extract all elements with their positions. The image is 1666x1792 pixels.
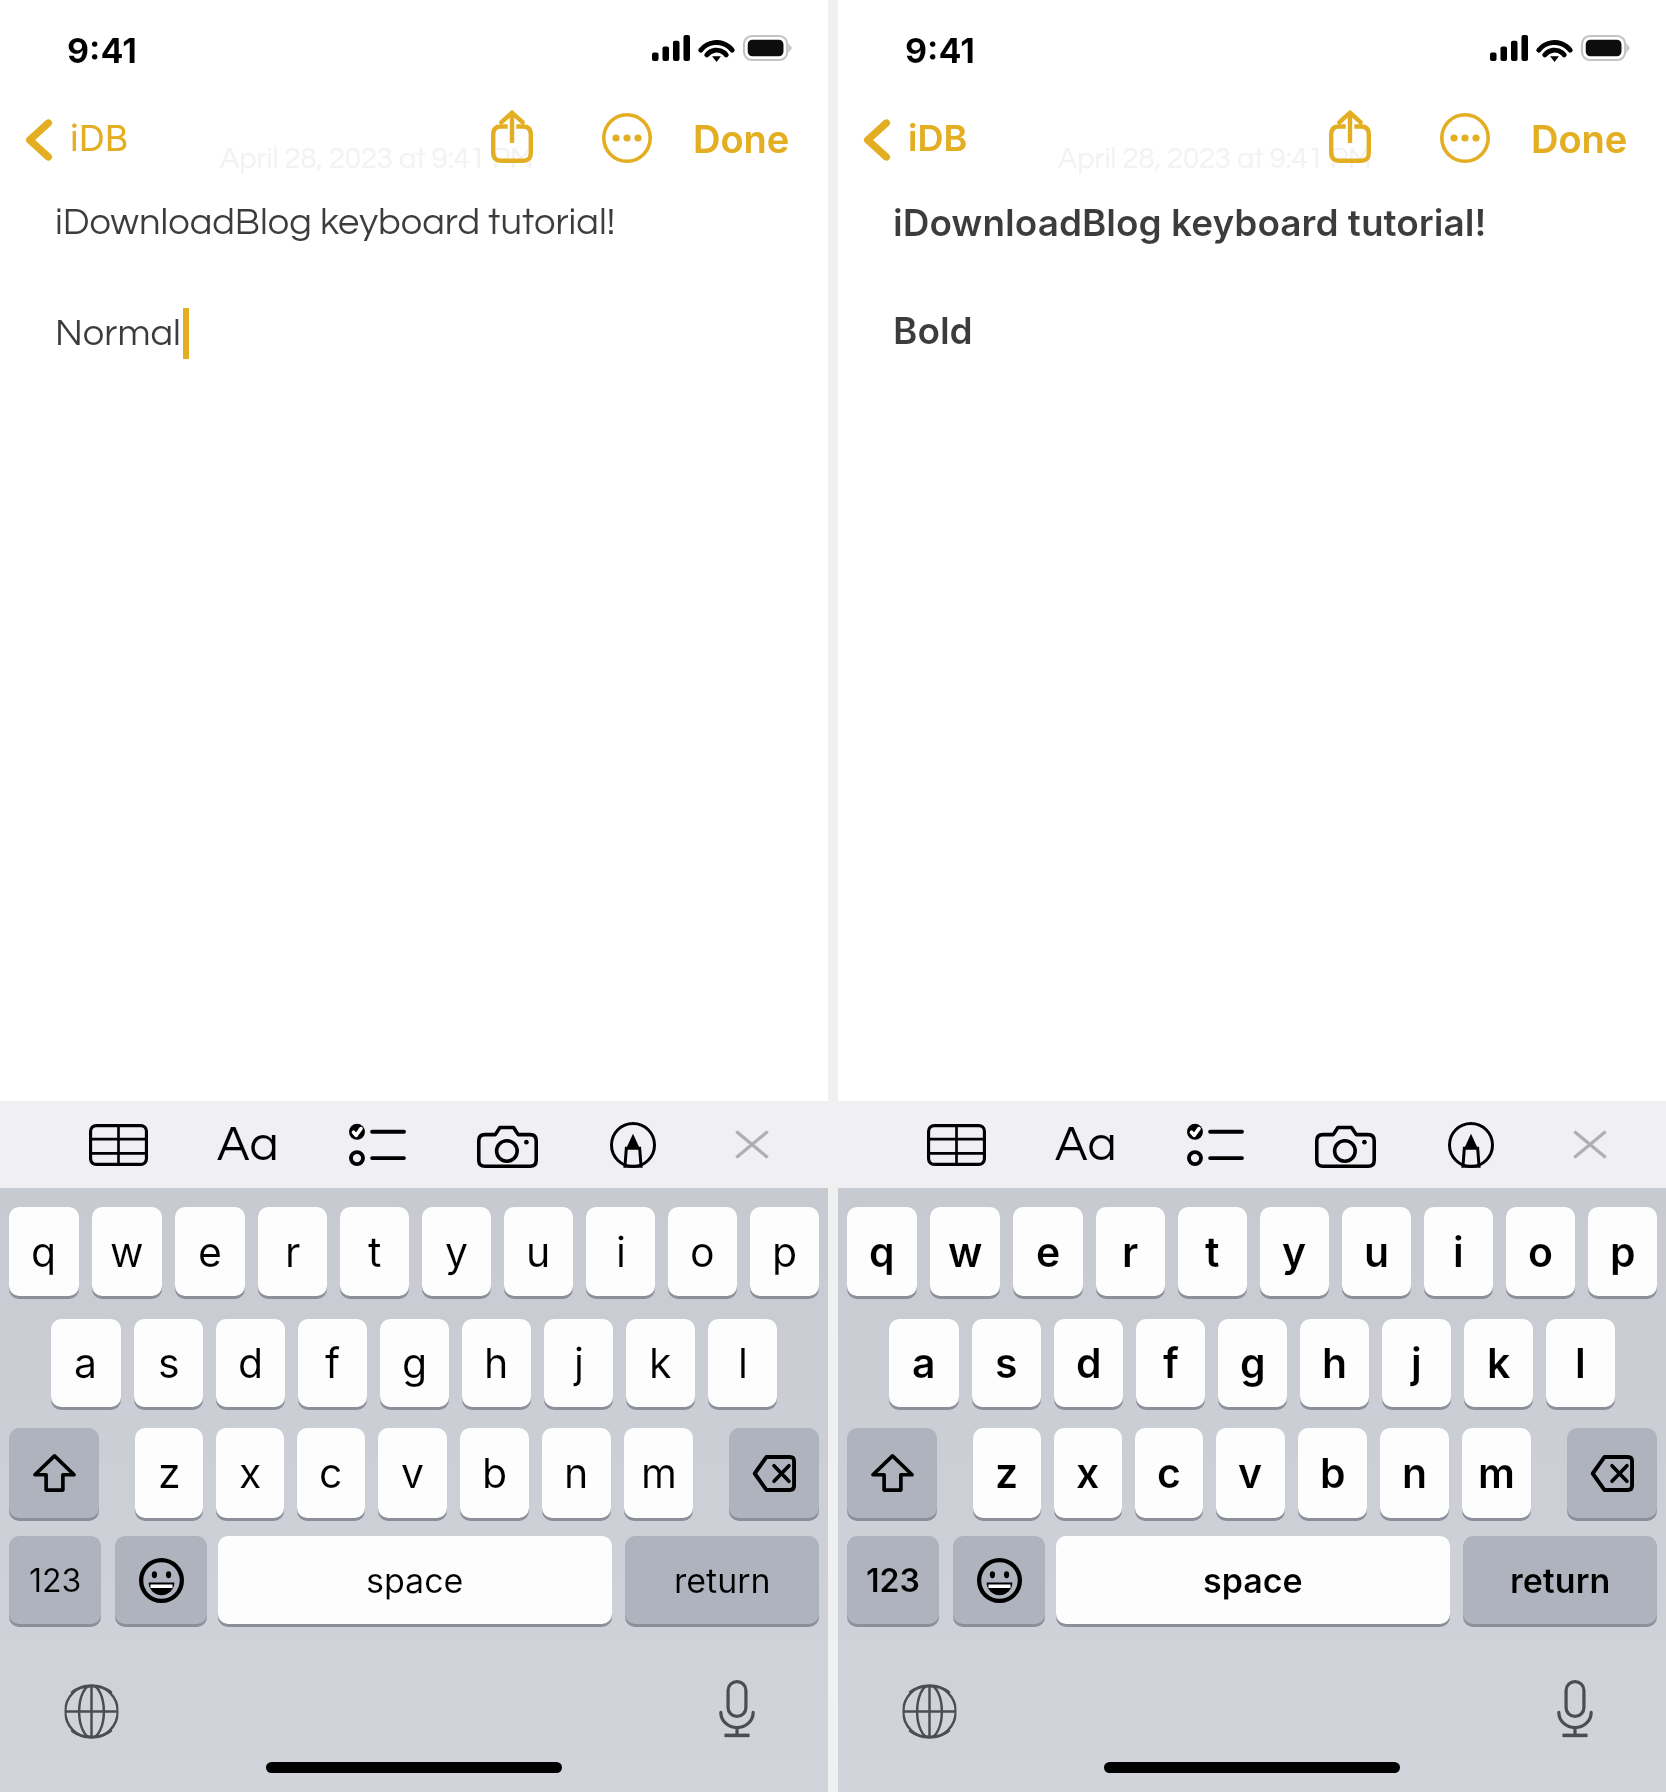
button[interactable]: Markup <box>1431 1109 1511 1181</box>
button[interactable]: m <box>1462 1428 1531 1518</box>
button[interactable]: Markup <box>593 1109 673 1181</box>
staticText: p <box>1610 1227 1636 1277</box>
button[interactable]: b <box>1298 1428 1367 1518</box>
button[interactable]: Close keyboard <box>712 1108 792 1180</box>
button[interactable]: d <box>216 1319 285 1407</box>
button[interactable]: v <box>378 1428 447 1518</box>
staticText: n <box>1402 1448 1428 1498</box>
button[interactable]: c <box>297 1428 365 1518</box>
button[interactable]: o <box>668 1207 737 1296</box>
button[interactable]: p <box>1588 1207 1657 1296</box>
button[interactable]: u <box>504 1207 573 1296</box>
button[interactable]: Done <box>688 105 794 173</box>
button[interactable]: Insert table <box>916 1109 996 1181</box>
button[interactable]: e <box>175 1207 245 1296</box>
button[interactable]: Change keyboard <box>50 1670 132 1752</box>
staticText: i <box>1453 1227 1464 1277</box>
button[interactable]: Emoji <box>115 1536 207 1624</box>
button[interactable]: Change keyboard <box>888 1670 970 1752</box>
button[interactable]: i <box>586 1207 655 1296</box>
button[interactable]: f <box>1136 1319 1205 1407</box>
button[interactable]: Close keyboard <box>1550 1108 1630 1180</box>
button[interactable]: Dictate <box>698 1668 776 1750</box>
button[interactable]: iDB <box>26 116 129 160</box>
button[interactable]: z <box>973 1428 1041 1518</box>
button[interactable]: h <box>462 1319 531 1407</box>
staticText: f <box>1163 1338 1179 1388</box>
button[interactable]: l <box>1546 1319 1615 1407</box>
button[interactable]: Aa <box>208 1109 288 1181</box>
button[interactable]: More options <box>589 100 665 176</box>
button[interactable]: d <box>1054 1319 1123 1407</box>
button[interactable]: z <box>135 1428 203 1518</box>
button[interactable]: space <box>218 1536 612 1624</box>
button[interactable]: s <box>972 1319 1041 1407</box>
button[interactable]: return <box>625 1536 819 1624</box>
button[interactable]: a <box>889 1319 959 1407</box>
button[interactable]: iDB <box>864 116 968 160</box>
button[interactable]: x <box>1054 1428 1122 1518</box>
staticText: c <box>319 1448 343 1498</box>
button[interactable]: n <box>1380 1428 1449 1518</box>
button[interactable]: Shift <box>9 1428 99 1518</box>
button[interactable]: m <box>624 1428 693 1518</box>
staticText: x <box>239 1448 262 1498</box>
button[interactable]: x <box>216 1428 284 1518</box>
button[interactable]: w <box>92 1207 162 1296</box>
button[interactable]: Camera <box>1305 1111 1385 1183</box>
button[interactable]: Share <box>1312 97 1388 173</box>
button[interactable]: 123 <box>847 1536 939 1624</box>
button[interactable]: j <box>544 1319 613 1407</box>
button[interactable]: f <box>298 1319 367 1407</box>
button[interactable]: r <box>1096 1207 1165 1296</box>
button[interactable]: o <box>1506 1207 1575 1296</box>
button[interactable]: Emoji <box>953 1536 1045 1624</box>
button[interactable]: a <box>51 1319 121 1407</box>
staticText: z <box>995 1448 1019 1498</box>
button[interactable]: y <box>1260 1207 1329 1296</box>
button[interactable]: More options <box>1427 100 1503 176</box>
button[interactable]: return <box>1463 1536 1657 1624</box>
button[interactable]: s <box>134 1319 203 1407</box>
button[interactable]: Checklist <box>336 1109 416 1181</box>
button[interactable]: e <box>1013 1207 1083 1296</box>
button[interactable]: j <box>1382 1319 1451 1407</box>
button[interactable]: Camera <box>467 1111 547 1183</box>
button[interactable]: Aa <box>1046 1109 1126 1181</box>
button[interactable]: t <box>340 1207 409 1296</box>
button[interactable]: Shift <box>847 1428 937 1518</box>
button[interactable]: k <box>1464 1319 1533 1407</box>
button[interactable]: r <box>258 1207 327 1296</box>
staticText: b <box>1320 1448 1346 1498</box>
button[interactable]: Backspace <box>729 1428 819 1518</box>
button[interactable]: v <box>1216 1428 1285 1518</box>
button[interactable]: Dictate <box>1536 1668 1614 1750</box>
button[interactable]: l <box>708 1319 777 1407</box>
staticText: Done <box>1531 116 1628 162</box>
staticText: y <box>1282 1227 1307 1277</box>
button[interactable]: t <box>1178 1207 1247 1296</box>
button[interactable]: w <box>930 1207 1000 1296</box>
button[interactable]: Insert table <box>78 1109 158 1181</box>
button[interactable]: h <box>1300 1319 1369 1407</box>
button[interactable]: g <box>380 1319 449 1407</box>
staticText: e <box>1036 1227 1061 1277</box>
button[interactable]: space <box>1056 1536 1450 1624</box>
button[interactable]: Share <box>474 97 550 173</box>
button[interactable]: Backspace <box>1567 1428 1657 1518</box>
button[interactable]: Checklist <box>1174 1109 1254 1181</box>
button[interactable]: n <box>542 1428 611 1518</box>
button[interactable]: 123 <box>9 1536 101 1624</box>
button[interactable]: k <box>626 1319 695 1407</box>
button[interactable]: q <box>847 1207 917 1296</box>
button[interactable]: q <box>9 1207 79 1296</box>
button[interactable]: Done <box>1526 105 1632 173</box>
staticText: iDB <box>908 116 968 160</box>
button[interactable]: c <box>1135 1428 1203 1518</box>
button[interactable]: g <box>1218 1319 1287 1407</box>
button[interactable]: b <box>460 1428 529 1518</box>
button[interactable]: i <box>1424 1207 1493 1296</box>
button[interactable]: y <box>422 1207 491 1296</box>
button[interactable]: p <box>750 1207 819 1296</box>
button[interactable]: u <box>1342 1207 1411 1296</box>
